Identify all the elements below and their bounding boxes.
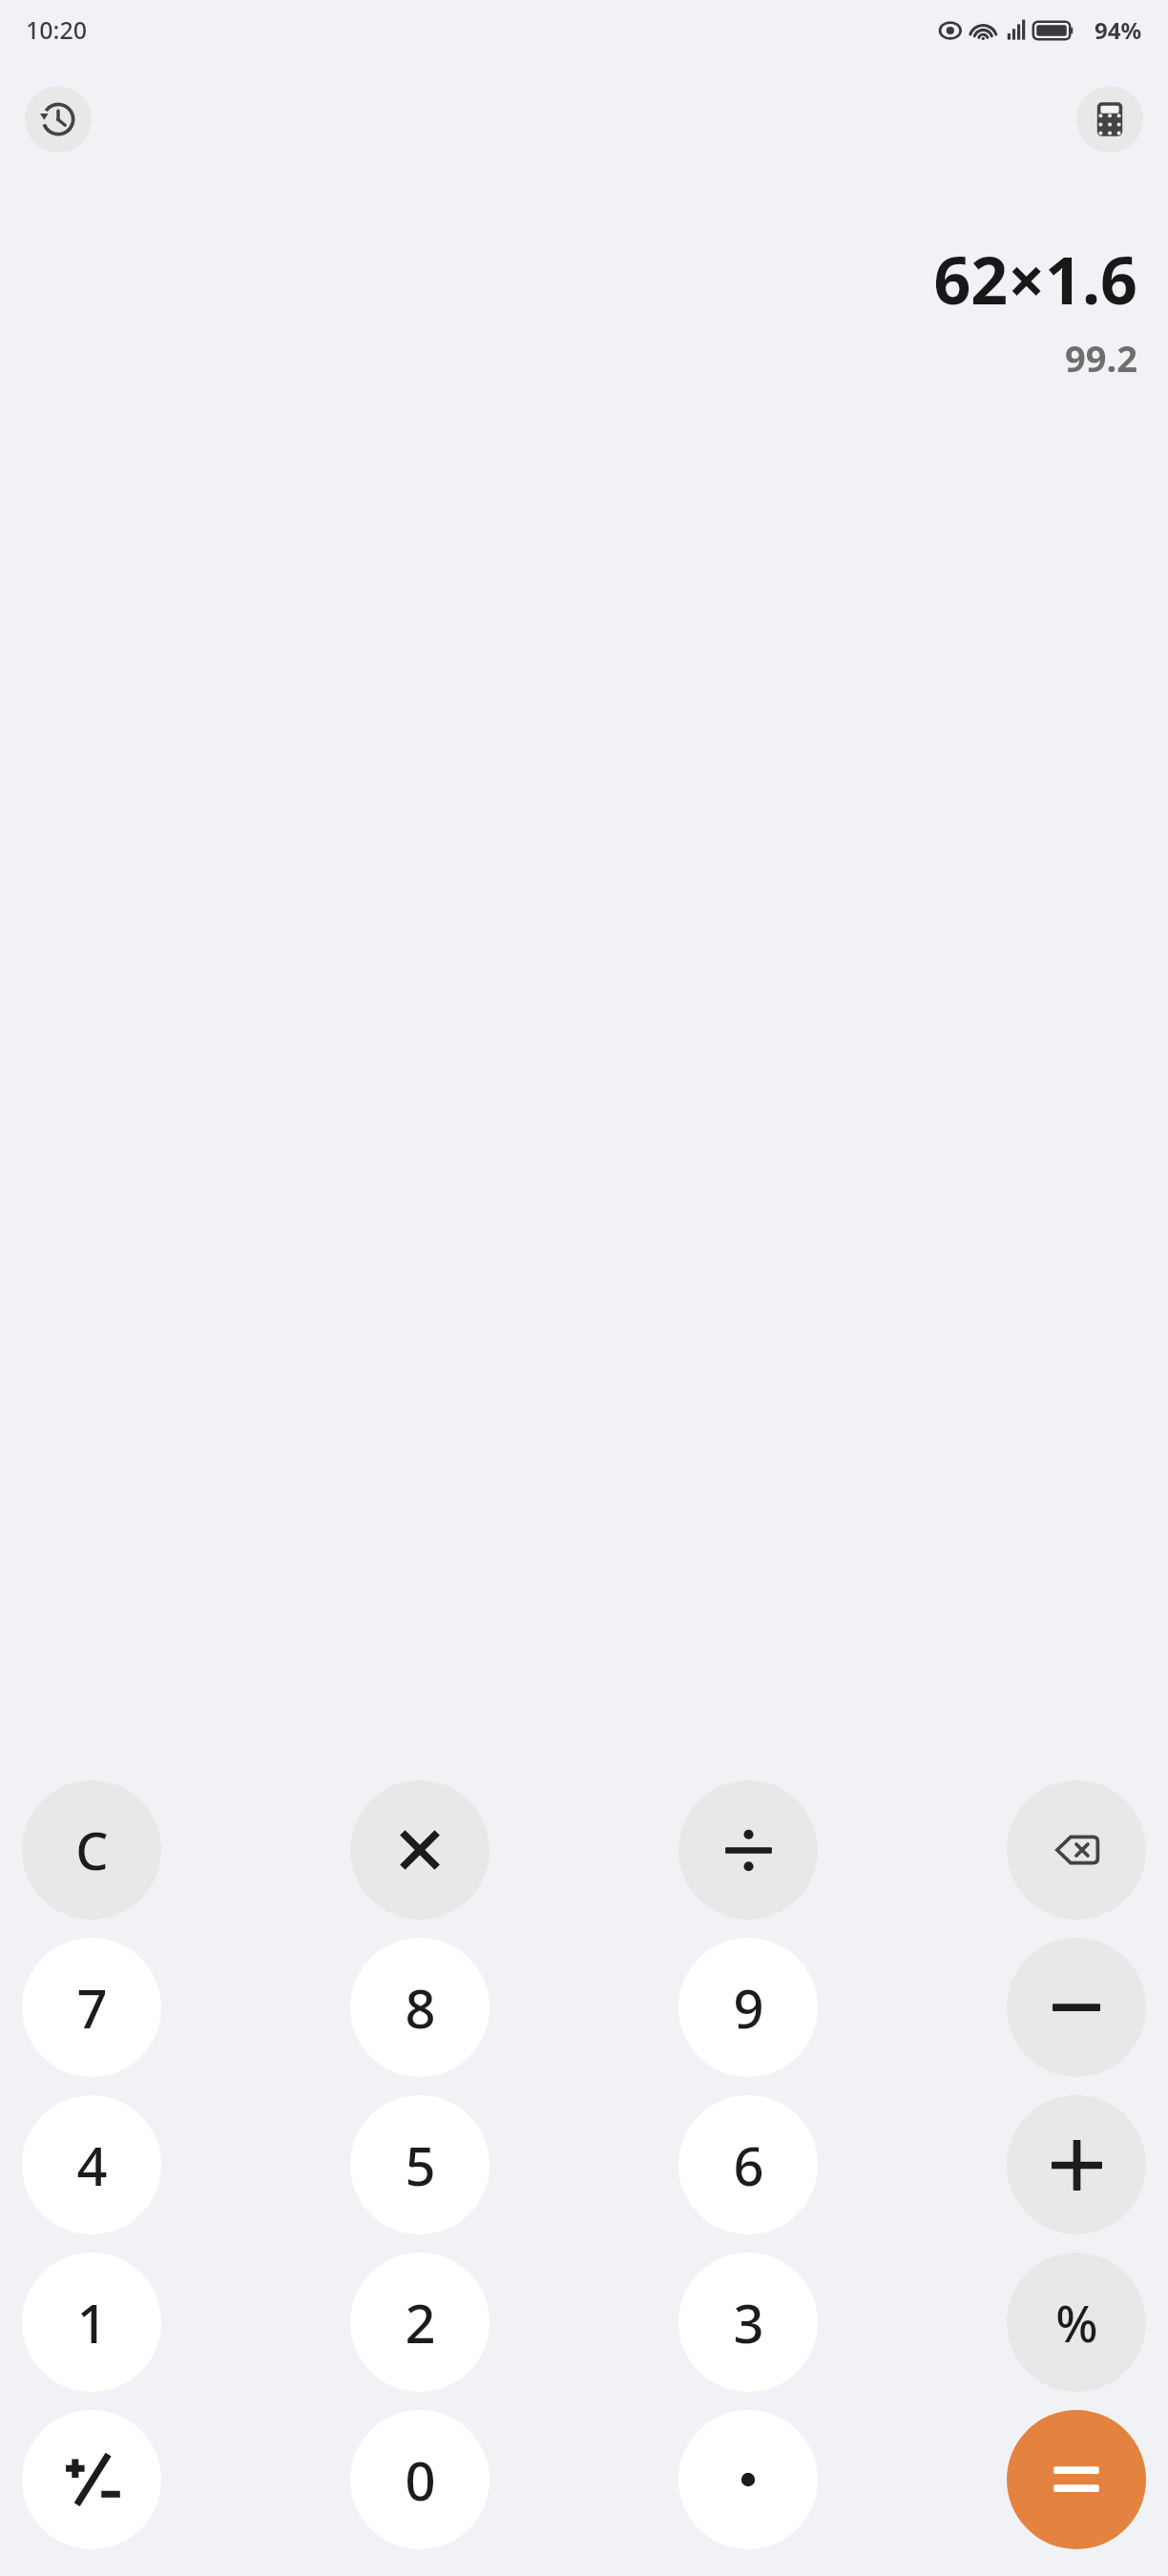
staticText: 62×1.6 bbox=[933, 235, 1137, 323]
staticText: 1 bbox=[76, 2286, 108, 2358]
button[interactable]: 7 bbox=[22, 1938, 161, 2077]
button[interactable]: 8 bbox=[350, 1938, 490, 2077]
staticText: 99.2 bbox=[1065, 333, 1137, 383]
staticText: 4 bbox=[76, 2129, 108, 2201]
button[interactable]: Equals bbox=[1007, 2410, 1146, 2549]
staticText: % bbox=[1055, 2289, 1098, 2357]
button[interactable]: 6 bbox=[678, 2095, 818, 2234]
staticText: 7 bbox=[76, 1971, 108, 2044]
staticText: 6 bbox=[733, 2129, 764, 2201]
button[interactable]: Plus bbox=[1007, 2095, 1146, 2234]
button[interactable]: Multiply bbox=[350, 1780, 490, 1920]
button[interactable]: 0 bbox=[350, 2410, 490, 2549]
button[interactable]: 3 bbox=[678, 2253, 818, 2392]
staticText: 8 bbox=[405, 1971, 436, 2044]
staticText: 0 bbox=[405, 2443, 436, 2516]
staticText: C bbox=[75, 1815, 109, 1885]
button[interactable]: Backspace bbox=[1007, 1780, 1146, 1920]
button[interactable]: 5 bbox=[350, 2095, 490, 2234]
button[interactable]: % bbox=[1007, 2253, 1146, 2392]
staticText: 3 bbox=[733, 2286, 764, 2358]
button[interactable]: 1 bbox=[22, 2253, 161, 2392]
staticText: 9 bbox=[733, 1971, 764, 2044]
button[interactable]: 4 bbox=[22, 2095, 161, 2234]
button[interactable]: Divide bbox=[678, 1780, 818, 1920]
staticText: 10:20 bbox=[26, 13, 88, 46]
button[interactable]: Decimal point bbox=[678, 2410, 818, 2549]
button[interactable]: 2 bbox=[350, 2253, 490, 2392]
button[interactable]: Calculator mode bbox=[1076, 86, 1143, 153]
button[interactable]: Plus minus bbox=[22, 2410, 161, 2549]
button[interactable]: History bbox=[25, 86, 92, 153]
button[interactable]: C bbox=[22, 1780, 161, 1920]
staticText: 5 bbox=[405, 2129, 436, 2201]
button[interactable]: 9 bbox=[678, 1938, 818, 2077]
button[interactable]: Minus bbox=[1007, 1938, 1146, 2077]
staticText: 2 bbox=[405, 2286, 436, 2358]
staticText: 94% bbox=[1095, 14, 1142, 46]
